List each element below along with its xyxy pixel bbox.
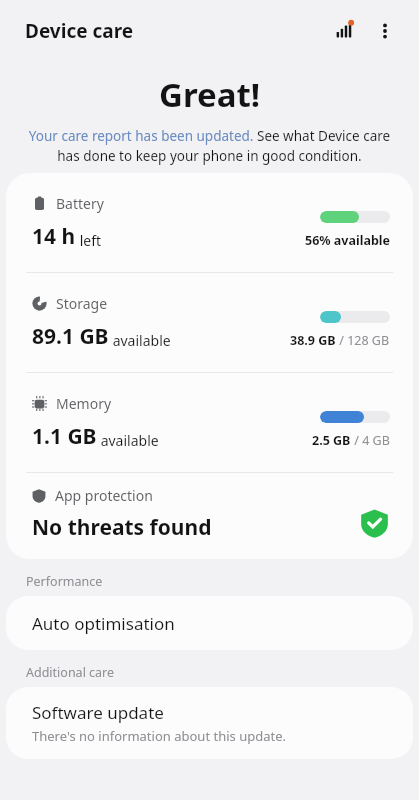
staticText: App protection bbox=[55, 486, 153, 505]
staticText: Storage bbox=[56, 294, 108, 313]
staticText: 89.1 GB bbox=[32, 322, 109, 351]
staticText: 2.5 GB bbox=[312, 432, 351, 449]
button[interactable]: Battery bbox=[6, 173, 413, 272]
staticText: 1.1 GB bbox=[32, 422, 97, 451]
staticText: There's no information about this update… bbox=[32, 727, 286, 745]
button[interactable]: Auto optimisation bbox=[6, 596, 413, 650]
staticText: left bbox=[76, 231, 102, 250]
staticText: Performance bbox=[26, 573, 103, 590]
staticText: 14 h bbox=[32, 222, 76, 251]
staticText: No threats found bbox=[32, 513, 212, 542]
staticText: 56% available bbox=[305, 232, 390, 249]
button[interactable]: App protection bbox=[6, 473, 413, 555]
staticText: Great! bbox=[159, 72, 261, 117]
staticText: Memory bbox=[56, 394, 112, 413]
staticText: / 4 GB bbox=[351, 432, 390, 449]
button[interactable]: Usage statistics bbox=[325, 11, 365, 51]
staticText: Your care report has been updated. See w… bbox=[26, 127, 393, 165]
staticText: available bbox=[109, 331, 171, 350]
button[interactable]: Storage bbox=[6, 273, 413, 372]
button[interactable]: More options bbox=[365, 11, 405, 51]
staticText: Battery bbox=[56, 194, 104, 213]
staticText: Additional care bbox=[26, 664, 115, 681]
staticText: Software update bbox=[32, 701, 164, 724]
staticText: Device care bbox=[25, 18, 134, 44]
button[interactable]: Software update bbox=[6, 687, 413, 759]
button[interactable]: Memory bbox=[6, 373, 413, 472]
staticText: 38.9 GB bbox=[290, 332, 336, 349]
staticText: available bbox=[97, 431, 159, 450]
staticText: Auto optimisation bbox=[32, 612, 175, 635]
staticText: / 128 GB bbox=[336, 332, 390, 349]
